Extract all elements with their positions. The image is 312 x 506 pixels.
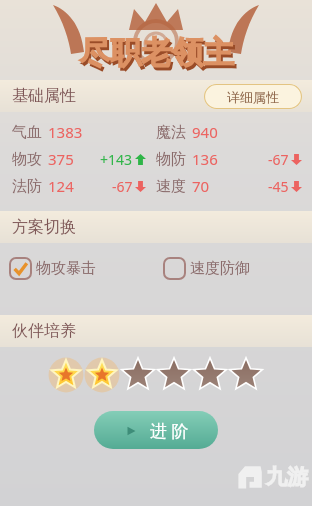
staticText: 速度防御 [190,259,250,278]
staticText: 气血 [12,123,42,142]
staticText: 70 [192,176,210,196]
staticText: 法防 [12,177,42,196]
staticText: 375 [48,149,74,169]
staticText: 详细属性 [227,89,279,105]
staticText: 1383 [48,122,83,142]
button[interactable]: 速度防御 [164,258,312,279]
staticText: 136 [192,149,218,169]
other: 九游 watermark [236,462,308,492]
staticText: +143 [100,150,133,169]
staticText: 物攻暴击 [36,259,96,278]
staticText: -67 [112,177,133,196]
staticText: 九游 [266,464,308,490]
staticText: 速度 [156,177,186,196]
staticText: -45 [268,177,289,196]
staticText: 魔法 [156,123,186,142]
button[interactable]: 物攻暴击 [10,258,156,279]
staticText: 940 [192,122,218,142]
staticText: -67 [268,150,289,169]
staticText: 方案切换 [12,217,76,237]
staticText: 尽职老领主 [79,33,234,72]
staticText: 物防 [156,150,186,169]
staticText: 伙伴培养 [12,321,76,341]
button[interactable]: 进 阶 [94,411,218,449]
staticText: 进 阶 [150,419,189,442]
staticText: 尽职老领主 [81,36,236,75]
button[interactable]: 详细属性 [204,84,302,109]
staticText: 124 [48,176,74,196]
staticText: 基础属性 [12,86,76,106]
staticText: 物攻 [12,150,42,169]
